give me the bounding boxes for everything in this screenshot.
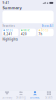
staticText: Sleep <box>41 28 49 32</box>
staticText: 9:41 <box>2 1 9 5</box>
staticText: Steps <box>6 28 13 32</box>
staticText: Favorites <box>2 24 14 28</box>
button[interactable]: Move <box>20 29 36 36</box>
staticText: Show All <box>42 24 54 28</box>
staticText: 7h <box>38 32 42 36</box>
staticText: 8,241 <box>3 32 12 36</box>
staticText: Move <box>23 28 30 32</box>
staticText: Sharing <box>16 96 26 99</box>
staticText: Browse <box>30 96 40 99</box>
button[interactable]: Sharing <box>14 90 28 100</box>
button[interactable]: Sleep <box>37 29 54 36</box>
staticText: Summary <box>2 5 21 10</box>
button[interactable]: Search <box>42 90 56 100</box>
button[interactable]: Summary <box>0 90 14 100</box>
button[interactable]: Browse <box>28 90 42 100</box>
staticText: Summary <box>2 96 12 99</box>
button[interactable]: Steps <box>2 29 18 36</box>
button[interactable]: Show All <box>42 24 54 28</box>
staticText: Highlights <box>2 38 17 41</box>
staticText: Search <box>45 96 53 99</box>
staticText: 420 <box>21 32 27 36</box>
